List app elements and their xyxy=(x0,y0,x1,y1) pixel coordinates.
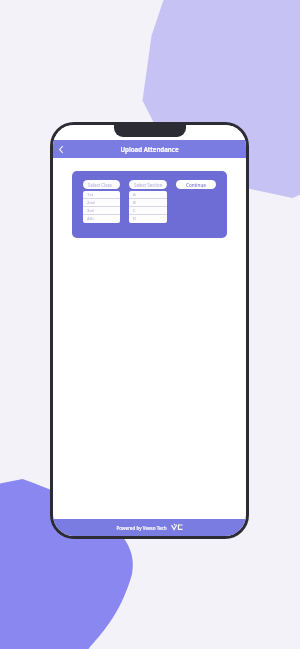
button[interactable]: Continue xyxy=(176,180,216,189)
staticText: Upload Attendance xyxy=(53,145,246,153)
button[interactable]: Select Class xyxy=(83,180,120,189)
button[interactable]: 3rd xyxy=(83,207,120,215)
button[interactable]: A xyxy=(129,191,167,199)
button[interactable]: Back xyxy=(53,141,69,157)
button[interactable]: C xyxy=(129,207,167,215)
button[interactable]: 4th xyxy=(83,215,120,223)
staticText: 4th xyxy=(87,216,94,222)
staticText: Select Class xyxy=(88,182,112,188)
button[interactable]: 2nd xyxy=(83,199,120,207)
button[interactable]: D xyxy=(129,215,167,223)
staticText: Continue xyxy=(176,182,216,188)
staticText: 1st xyxy=(87,192,93,198)
button[interactable]: B xyxy=(129,199,167,207)
staticText: A xyxy=(133,192,136,198)
staticText: 3rd xyxy=(87,208,94,214)
staticText: B xyxy=(133,200,136,206)
button[interactable]: Select Section xyxy=(129,180,167,189)
button[interactable]: 1st xyxy=(83,191,120,199)
staticText: 2nd xyxy=(87,200,95,206)
staticText: Select Section xyxy=(134,182,163,188)
other: Veeso Tech logo xyxy=(171,523,183,532)
staticText: D xyxy=(133,216,137,222)
staticText: Powered by Veeso Tech xyxy=(116,525,167,531)
staticText: C xyxy=(133,208,136,214)
